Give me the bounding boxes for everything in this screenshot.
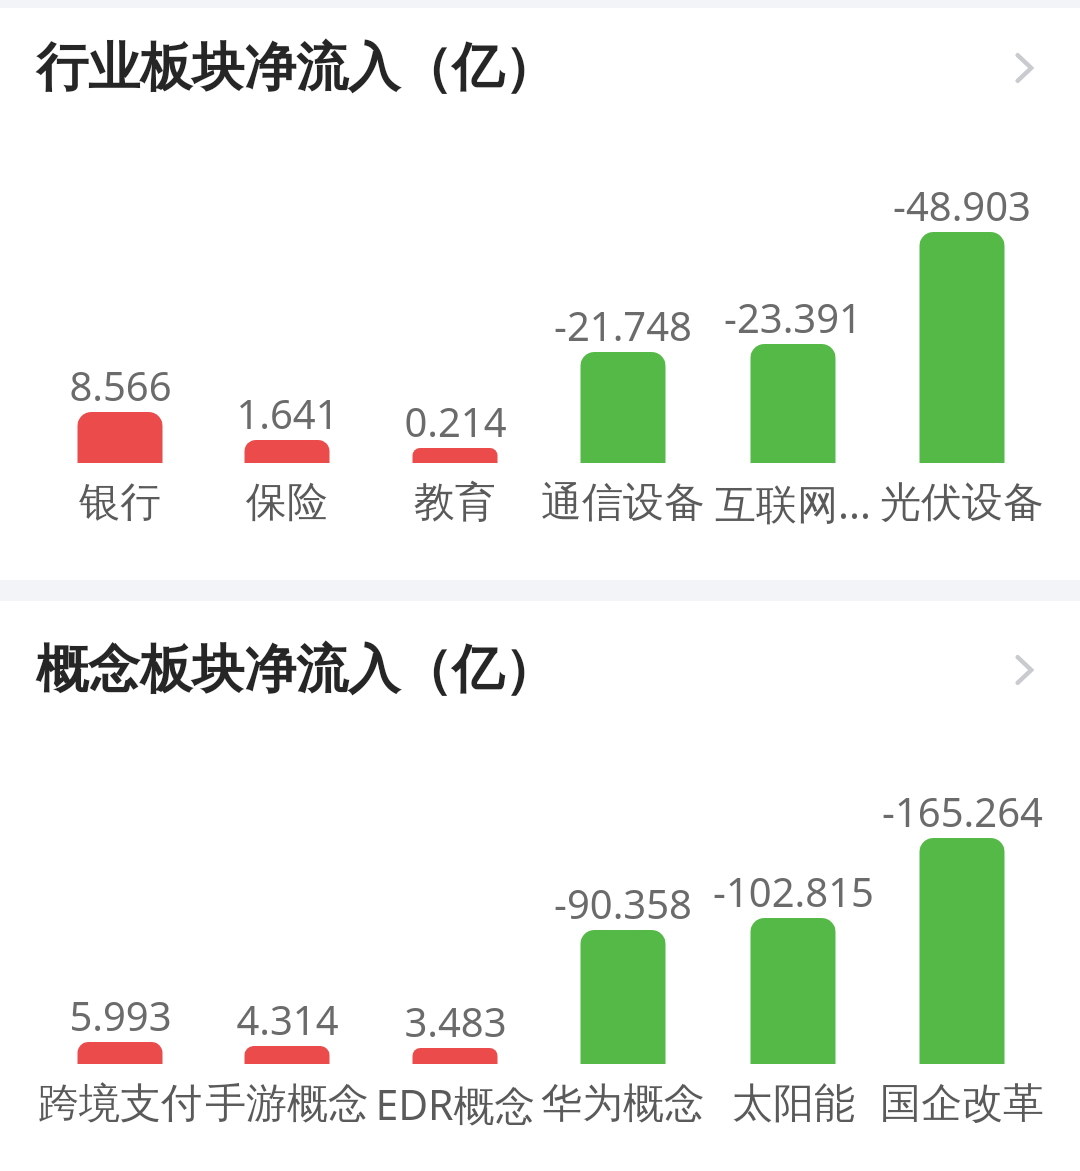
staticText: 华为概念: [541, 1078, 705, 1130]
staticText: 3.483: [404, 994, 507, 1046]
button[interactable]: 国企改革: [878, 1076, 1046, 1132]
staticText: 行业板块净流入（亿）: [36, 35, 556, 101]
staticText: -23.391: [724, 290, 862, 342]
button[interactable]: 光伏设备: [878, 475, 1046, 531]
staticText: 保险: [246, 477, 328, 529]
button[interactable]: 银行: [36, 475, 204, 531]
staticText: -165.264: [882, 784, 1043, 836]
button[interactable]: 互联网...: [709, 475, 877, 531]
button[interactable]: 概念板块净流入（亿）: [0, 632, 1080, 708]
staticText: 0.214: [404, 394, 507, 446]
button[interactable]: 太阳能: [709, 1076, 877, 1132]
button[interactable]: 手游概念: [203, 1076, 371, 1132]
staticText: 4.314: [236, 992, 339, 1044]
button[interactable]: EDR概念: [371, 1076, 539, 1132]
staticText: 太阳能: [732, 1078, 855, 1130]
staticText: -21.748: [554, 298, 692, 350]
button[interactable]: 华为概念: [539, 1076, 707, 1132]
staticText: 手游概念: [205, 1078, 369, 1130]
button[interactable]: 行业板块净流入（亿）: [0, 30, 1080, 106]
staticText: 国企改革: [880, 1078, 1044, 1130]
other: More: [996, 642, 1052, 698]
staticText: 通信设备: [541, 477, 705, 529]
staticText: 互联网...: [715, 475, 871, 531]
button[interactable]: 保险: [203, 475, 371, 531]
staticText: 银行: [79, 477, 161, 529]
button[interactable]: 通信设备: [539, 475, 707, 531]
staticText: 光伏设备: [880, 477, 1044, 529]
other: More: [996, 40, 1052, 96]
staticText: -102.815: [713, 864, 874, 916]
staticText: 1.641: [236, 386, 339, 438]
button[interactable]: 跨境支付: [36, 1076, 204, 1132]
staticText: 跨境支付: [38, 1078, 202, 1130]
staticText: 8.566: [69, 358, 172, 410]
staticText: 教育: [414, 477, 496, 529]
staticText: EDR概念: [375, 1076, 536, 1132]
staticText: 概念板块净流入（亿）: [36, 637, 556, 703]
staticText: -90.358: [554, 876, 692, 928]
staticText: -48.903: [893, 178, 1031, 230]
staticText: 5.993: [69, 988, 172, 1040]
button[interactable]: 教育: [371, 475, 539, 531]
